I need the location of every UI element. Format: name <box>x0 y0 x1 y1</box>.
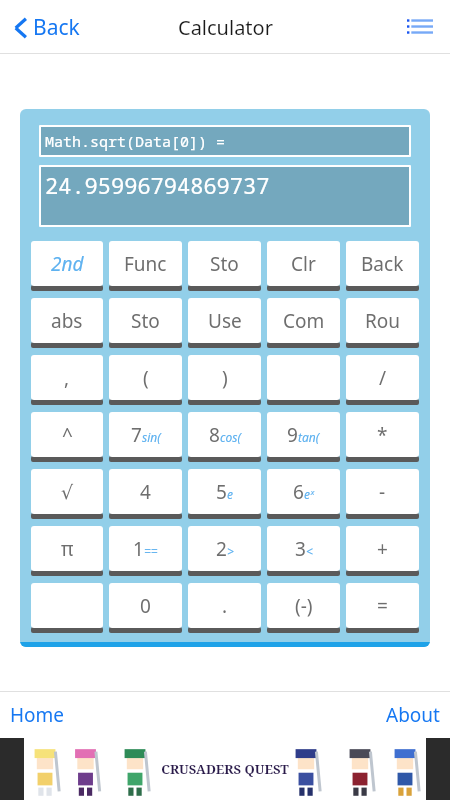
button[interactable] <box>267 355 340 405</box>
staticText: sin( <box>142 429 161 445</box>
staticText: Clr <box>291 251 316 277</box>
button[interactable] <box>31 583 103 633</box>
staticText: 5 <box>216 479 227 505</box>
button[interactable]: 9 <box>267 412 340 462</box>
button[interactable]: Rou <box>346 298 419 348</box>
staticText: Sto <box>131 308 160 334</box>
staticText: abs <box>51 308 83 334</box>
button[interactable]: / <box>346 355 419 405</box>
button[interactable]: √ <box>31 469 103 519</box>
button[interactable]: (-) <box>267 583 340 633</box>
staticText: tan( <box>298 429 320 445</box>
staticText: About <box>386 702 440 728</box>
staticText: 2 <box>216 536 227 562</box>
staticText: 9 <box>287 422 298 448</box>
button[interactable]: Advertisement <box>0 738 450 800</box>
staticText: Math.sqrt(Data[0]) = <box>45 131 226 151</box>
button[interactable]: Com <box>267 298 340 348</box>
button[interactable]: . <box>188 583 261 633</box>
staticText: = <box>377 593 388 619</box>
staticText: < <box>306 543 313 559</box>
staticText: Calculator <box>178 14 273 41</box>
button[interactable]: * <box>346 412 419 462</box>
staticText: Use <box>208 308 242 334</box>
button[interactable]: 3 <box>267 526 340 576</box>
staticText: 8 <box>209 422 220 448</box>
staticText: ^ <box>62 422 73 448</box>
button[interactable]: Back <box>10 9 84 46</box>
staticText: CRUSADERS QUEST <box>161 760 289 778</box>
button[interactable]: Back <box>346 241 419 291</box>
staticText: / <box>379 365 387 391</box>
staticText: - <box>379 479 386 505</box>
staticText: 0 <box>140 593 151 619</box>
button[interactable]: + <box>346 526 419 576</box>
staticText: Rou <box>365 308 401 334</box>
staticText: √ <box>61 481 74 503</box>
button[interactable]: ^ <box>31 412 103 462</box>
staticText: Func <box>124 251 167 277</box>
button[interactable]: ( <box>109 355 182 405</box>
button[interactable]: Clr <box>267 241 340 291</box>
staticText: == <box>144 543 158 559</box>
staticText: Back <box>33 13 80 42</box>
button[interactable]: 2 <box>188 526 261 576</box>
button[interactable]: ) <box>188 355 261 405</box>
staticText: Home <box>10 702 65 728</box>
staticText: (-) <box>295 593 313 619</box>
staticText: 6 <box>293 479 304 505</box>
button[interactable]: , <box>31 355 103 405</box>
staticText: + <box>377 536 388 562</box>
button[interactable]: Sto <box>109 298 182 348</box>
staticText: * <box>377 422 388 448</box>
staticText: > <box>227 543 234 559</box>
staticText: Back <box>361 251 404 277</box>
button[interactable]: 7 <box>109 412 182 462</box>
button[interactable]: 1 <box>109 526 182 576</box>
button[interactable]: Math.sqrt(Data[0]) = <box>41 127 409 155</box>
button[interactable]: 4 <box>109 469 182 519</box>
staticText: e <box>227 486 233 502</box>
staticText: 1 <box>133 536 144 562</box>
staticText: 24.95996794869737 <box>45 170 270 200</box>
staticText: ) <box>222 365 228 391</box>
staticText: eˣ <box>304 486 314 502</box>
staticText: π <box>61 536 74 562</box>
staticText: 7 <box>131 422 142 448</box>
button[interactable]: Func <box>109 241 182 291</box>
button[interactable]: 8 <box>188 412 261 462</box>
staticText: 2nd <box>51 251 84 277</box>
button[interactable]: = <box>346 583 419 633</box>
button[interactable]: 24.95996794869737 <box>41 167 409 225</box>
staticText: Sto <box>210 251 239 277</box>
button[interactable]: 6 <box>267 469 340 519</box>
button[interactable]: 5 <box>188 469 261 519</box>
button[interactable]: abs <box>31 298 103 348</box>
button[interactable]: Sto <box>188 241 261 291</box>
staticText: , <box>64 365 70 391</box>
staticText: Com <box>283 308 325 334</box>
button[interactable]: 2nd <box>31 241 103 291</box>
staticText: 4 <box>140 479 151 505</box>
staticText: . <box>222 593 228 619</box>
staticText: ( <box>143 365 149 391</box>
staticText: 3 <box>295 536 306 562</box>
button[interactable]: Menu <box>402 9 438 45</box>
button[interactable]: About <box>376 696 450 734</box>
button[interactable]: - <box>346 469 419 519</box>
button[interactable]: 0 <box>109 583 182 633</box>
button[interactable]: Home <box>0 696 75 734</box>
button[interactable]: Use <box>188 298 261 348</box>
staticText: cos( <box>220 429 241 445</box>
button[interactable]: π <box>31 526 103 576</box>
